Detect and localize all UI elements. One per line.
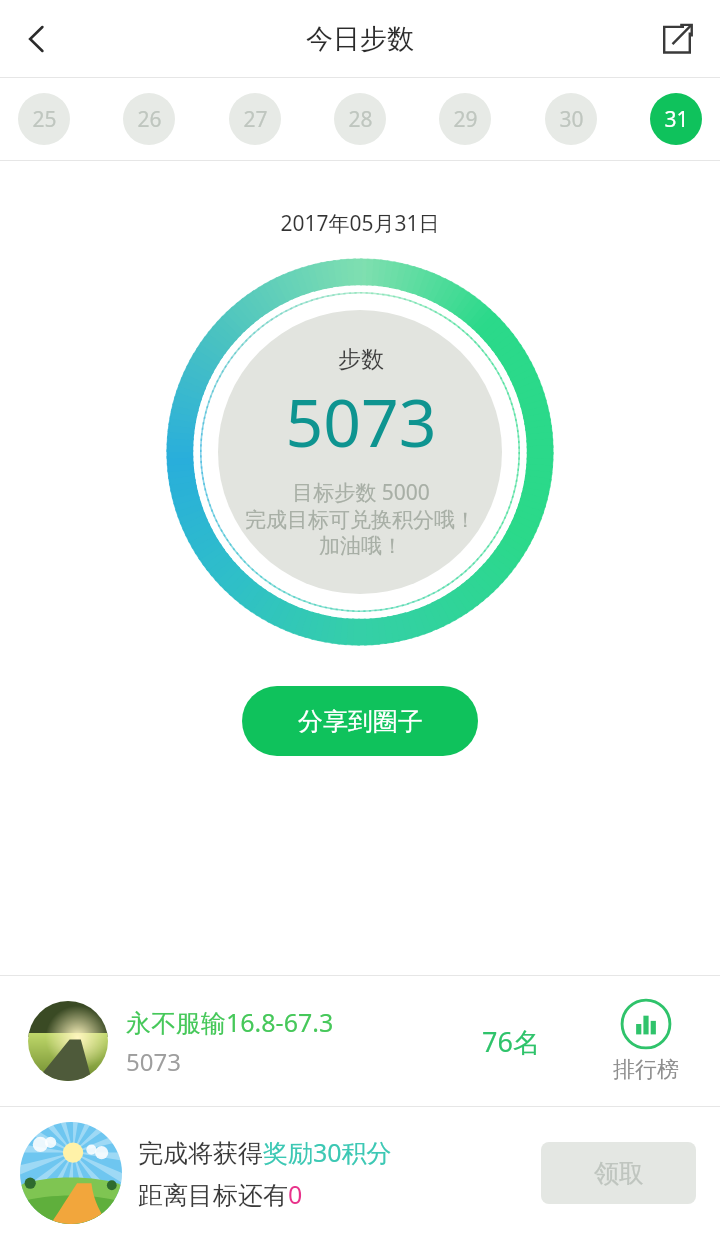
staticText: 目标步数 5000 bbox=[292, 478, 430, 507]
button[interactable]: 25 bbox=[18, 93, 70, 145]
staticText: 永不服输16.8-67.3 bbox=[126, 1005, 436, 1039]
button[interactable]: Share bbox=[648, 10, 706, 68]
button[interactable]: 31 bbox=[650, 93, 702, 145]
staticText: 28 bbox=[348, 105, 373, 134]
button[interactable]: Back bbox=[8, 10, 66, 68]
button[interactable]: 27 bbox=[229, 93, 281, 145]
staticText: 76名 bbox=[436, 1023, 586, 1060]
staticText: 26 bbox=[137, 105, 162, 134]
button[interactable]: 30 bbox=[545, 93, 597, 145]
button[interactable]: 29 bbox=[439, 93, 491, 145]
button[interactable]: 26 bbox=[123, 93, 175, 145]
staticText: 25 bbox=[32, 105, 57, 134]
staticText: 5073 bbox=[285, 376, 437, 466]
staticText: 今日步数 bbox=[306, 22, 414, 56]
staticText: 31 bbox=[664, 105, 689, 134]
staticText: 领取 bbox=[594, 1158, 644, 1189]
staticText: 加油哦！ bbox=[319, 533, 403, 559]
staticText: 27 bbox=[243, 105, 268, 134]
button[interactable]: 领取 bbox=[541, 1142, 696, 1204]
staticText: 29 bbox=[453, 105, 478, 134]
staticText: 完成目标可兑换积分哦！ bbox=[245, 507, 476, 533]
staticText: 5073 bbox=[126, 1045, 436, 1078]
staticText: 30 bbox=[559, 105, 584, 134]
button[interactable]: 永不服输16.8-67.3 bbox=[0, 976, 720, 1106]
staticText: 分享到圈子 bbox=[298, 706, 423, 737]
staticText: 步数 bbox=[338, 345, 384, 374]
button[interactable]: 分享到圈子 bbox=[242, 686, 478, 756]
button[interactable]: 排行榜 bbox=[596, 998, 696, 1084]
button[interactable]: 28 bbox=[334, 93, 386, 145]
staticText: 2017年05月31日 bbox=[280, 209, 440, 238]
staticText: 完成将获得奖励30积分 bbox=[138, 1135, 392, 1169]
staticText: 排行榜 bbox=[613, 1056, 679, 1084]
staticText: 距离目标还有0 bbox=[138, 1177, 303, 1211]
